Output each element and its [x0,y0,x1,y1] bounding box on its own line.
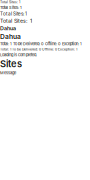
staticText: Dahua [0,32,21,40]
staticText: Total Sites: 1 [0,5,22,10]
staticText: Dahua [0,25,16,31]
staticText: Total: 1 To be Delivered: 0 Offline: 0 E… [0,47,77,51]
staticText: Total Sites: 1 [0,0,20,4]
staticText: Sites [0,58,22,69]
staticText: Total: 1 To be Delivered: 0 Offline: 0 E… [0,41,82,46]
staticText: Loading is completed. [0,52,37,57]
staticText: Total Sites: 1 [0,17,32,24]
staticText: Message [0,70,16,75]
staticText: Total Sites: 1 [0,11,27,16]
